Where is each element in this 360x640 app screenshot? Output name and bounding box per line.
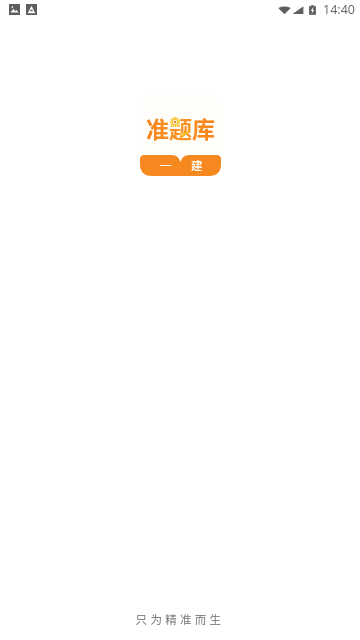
other: 准题库 一建 app logo bbox=[140, 95, 221, 176]
staticText: 准题库 bbox=[146, 111, 215, 144]
staticText: 一 bbox=[160, 157, 172, 174]
staticText: 建 bbox=[191, 157, 203, 174]
staticText: 14:40 bbox=[323, 1, 355, 18]
staticText: 只为精准而生 bbox=[0, 611, 360, 628]
